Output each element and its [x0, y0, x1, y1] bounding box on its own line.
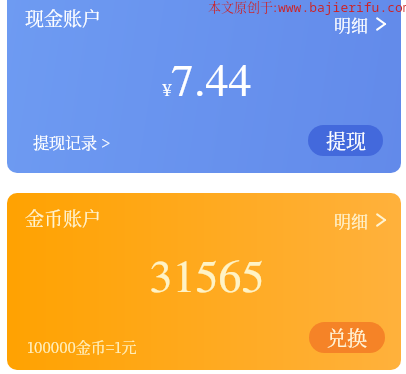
staticText: www.bajierifu.com	[278, 0, 406, 16]
button[interactable]: 金币账户	[7, 193, 401, 370]
button[interactable]: 提现	[308, 125, 383, 156]
staticText: 现金账户	[25, 4, 102, 31]
staticText: 7.44	[171, 59, 252, 105]
staticText: 明细	[334, 208, 368, 232]
staticText: ¥	[162, 82, 172, 99]
staticText: 兑换	[327, 323, 367, 352]
staticText: 31565	[10, 255, 401, 301]
button[interactable]: 现金账户	[7, 0, 401, 173]
button[interactable]: 明细	[331, 9, 383, 39]
staticText: 100000金币=1元	[27, 336, 137, 358]
button[interactable]: 兑换	[309, 322, 385, 353]
button[interactable]: 明细	[331, 205, 383, 235]
staticText: 明细	[334, 12, 368, 36]
staticText: 金币账户	[25, 204, 102, 231]
button[interactable]: 提现记录 >	[33, 131, 111, 154]
staticText: 提现	[326, 126, 366, 155]
staticText: 本文原创于:	[208, 0, 278, 16]
